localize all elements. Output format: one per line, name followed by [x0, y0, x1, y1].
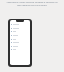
button[interactable] — [10, 30, 30, 32]
button[interactable] — [10, 27, 30, 29]
button[interactable] — [10, 45, 30, 47]
staticText: Application screen mockup showing a sett… — [4, 1, 60, 7]
button[interactable] — [10, 23, 30, 25]
button[interactable] — [10, 34, 30, 36]
button[interactable] — [10, 41, 30, 43]
button[interactable] — [10, 48, 30, 50]
button[interactable] — [10, 38, 30, 40]
other: Notch — [16, 20, 24, 22]
